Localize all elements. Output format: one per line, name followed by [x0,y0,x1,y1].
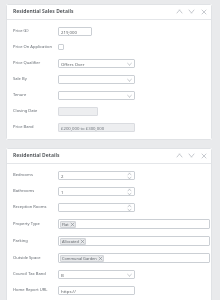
staticText: Tenure [13,92,27,98]
staticText: Sale By [13,76,27,82]
button[interactable] [58,75,135,84]
staticText: Price Qualifier [13,60,41,66]
staticText: Reception Rooms [13,204,47,210]
staticText: Price On Application [13,44,52,50]
staticText: Council Tax Band [13,271,46,277]
button[interactable]: Communal Garden [58,253,210,263]
staticText: Allocated [62,239,79,244]
staticText: Bedrooms [13,172,33,178]
staticText: 2 [61,173,64,179]
button[interactable] [58,107,98,116]
staticText: https://media.scottishhomereports.c [61,288,132,294]
button[interactable]: Expand section [187,151,196,160]
button[interactable]: Allocated [58,236,210,246]
staticText: £200,000 to £300,000 [61,125,105,131]
staticText: Offers Over [61,61,85,67]
staticText: 219,000 [61,29,77,35]
button[interactable]: 219,000 [58,27,92,36]
button[interactable]: £200,000 to £300,000 [58,123,135,132]
staticText: Closing Date [13,108,38,114]
button[interactable]: https://media.scottishhomereports.c [58,286,135,295]
staticText: B [61,272,64,278]
staticText: Flat [62,222,69,227]
staticText: Property Type [13,221,40,227]
staticText: Residential Details [13,152,60,159]
button[interactable]: Close section [199,7,208,16]
button[interactable]: Price On Application [58,44,64,50]
staticText: Bathrooms [13,188,35,194]
button[interactable]: Collapse section [175,7,184,16]
button[interactable]: Collapse section [175,151,184,160]
staticText: Residential Sales Details [13,8,74,15]
button[interactable]: Flat [58,219,210,229]
staticText: Parking [13,238,28,244]
button[interactable] [58,203,135,212]
button[interactable]: 1 [58,187,135,196]
button[interactable]: 2 [58,171,135,180]
button[interactable]: Close section [199,151,208,160]
staticText: Home Report URL [13,287,48,293]
staticText: Communal Garden [62,256,97,261]
button[interactable] [58,91,135,100]
staticText: Price Band [13,124,34,130]
staticText: Price (£) [13,28,29,34]
staticText: 1 [61,189,64,195]
button[interactable]: Offers Over [58,59,135,68]
button[interactable]: B [58,270,135,279]
button[interactable]: Expand section [187,7,196,16]
staticText: Outside Space [13,255,41,261]
